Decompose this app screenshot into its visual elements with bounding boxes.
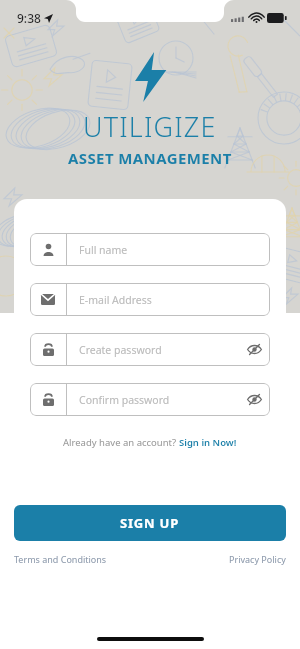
button[interactable]: E-mail Address — [30, 283, 270, 316]
button[interactable]: Confirm password — [30, 383, 270, 416]
staticText: Terms and Conditions — [14, 553, 107, 565]
staticText: Full name — [79, 243, 270, 257]
button[interactable]: Sign in Now! — [179, 436, 237, 449]
staticText: Already have an account? — [63, 436, 179, 449]
button[interactable]: SIGN UP — [14, 505, 286, 541]
staticText: UTILIGIZE — [83, 108, 217, 145]
staticText: Sign in Now! — [179, 436, 237, 449]
staticText: E-mail Address — [79, 293, 270, 307]
button[interactable]: Show password — [238, 383, 270, 416]
button[interactable]: Create password — [30, 333, 270, 366]
staticText: ASSET MANAGEMENT — [68, 148, 232, 168]
button[interactable]: Terms and Conditions — [14, 553, 107, 565]
button[interactable]: Full name — [30, 233, 270, 266]
button[interactable]: Privacy Policy — [229, 553, 286, 565]
button[interactable]: Show password — [238, 333, 270, 366]
staticText: Privacy Policy — [229, 553, 286, 565]
staticText: SIGN UP — [120, 514, 180, 532]
staticText: Confirm password — [79, 393, 238, 407]
staticText: Create password — [79, 343, 238, 357]
staticText: 9:38 — [17, 10, 41, 26]
